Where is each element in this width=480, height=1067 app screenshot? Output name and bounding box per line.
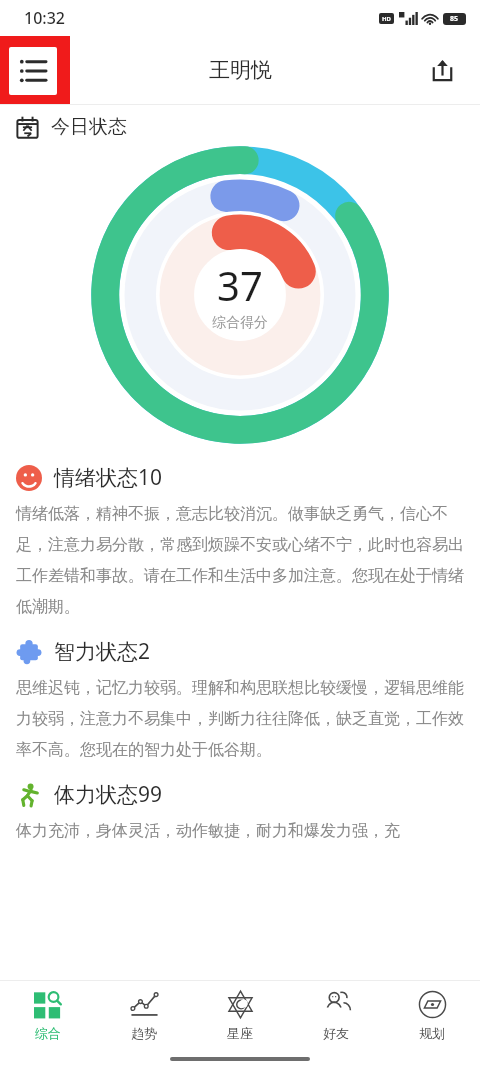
staticText: 体力充沛，身体灵活，动作敏捷，耐力和爆发力强，充 — [16, 821, 464, 841]
button[interactable]: 综合 — [0, 981, 96, 1057]
button[interactable]: 智力状态2 — [16, 637, 480, 666]
staticText: 思维迟钝，记忆力较弱。理解和构思联想比较缓慢，逻辑思维能力较弱，注意力不易集中，… — [16, 678, 464, 760]
staticText: 体力状态99 — [54, 780, 163, 809]
button[interactable]: 好友 — [288, 981, 384, 1057]
button[interactable]: Menu — [9, 47, 57, 95]
button[interactable]: 趋势 — [96, 981, 192, 1057]
staticText: 今日状态 — [51, 115, 127, 139]
staticText: 趋势 — [131, 1025, 157, 1041]
staticText: 智力状态2 — [54, 637, 151, 666]
button[interactable]: 星座 — [192, 981, 288, 1057]
staticText: 星座 — [227, 1025, 253, 1041]
staticText: 综合得分 — [212, 314, 268, 332]
button[interactable]: Share — [422, 50, 462, 90]
staticText: 王明悦 — [209, 57, 272, 83]
button[interactable]: 体力状态99 — [16, 780, 480, 809]
staticText: 综合 — [35, 1025, 61, 1041]
staticText: 10:32 — [24, 7, 65, 29]
staticText: 情绪低落，精神不振，意志比较消沉。做事缺乏勇气，信心不足，注意力易分散，常感到烦… — [16, 504, 464, 617]
staticText: 情绪状态10 — [54, 463, 163, 492]
staticText: HD — [382, 15, 391, 23]
staticText: 好友 — [323, 1025, 349, 1041]
staticText: 85 — [450, 14, 459, 24]
button[interactable]: 规划 — [384, 981, 480, 1057]
staticText: 规划 — [419, 1025, 445, 1041]
button[interactable]: 情绪状态10 — [16, 463, 480, 492]
staticText: 37 — [217, 258, 263, 312]
